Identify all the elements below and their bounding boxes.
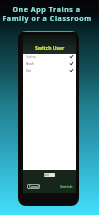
other: Selected xyxy=(70,55,73,58)
staticText: Switch xyxy=(60,184,73,189)
button[interactable]: Sydney xyxy=(23,53,76,60)
staticText: Zoe xyxy=(26,69,32,73)
staticText: Add User xyxy=(44,173,55,177)
button[interactable]: Zoe xyxy=(23,67,76,74)
staticText: Sydney xyxy=(26,55,37,59)
staticText: Switch User xyxy=(35,45,65,52)
button[interactable]: Cancel xyxy=(27,184,40,189)
other: Selected xyxy=(70,62,73,65)
other: Selected xyxy=(70,69,73,72)
staticText: Cancel xyxy=(29,185,39,189)
button[interactable]: Noah xyxy=(23,60,76,67)
button[interactable]: Add User xyxy=(44,173,55,177)
staticText: Noah xyxy=(26,62,34,66)
button[interactable]: Switch xyxy=(59,184,73,189)
staticText: Family or a Classroom xyxy=(2,14,92,24)
staticText: One App Trains a xyxy=(12,5,81,15)
